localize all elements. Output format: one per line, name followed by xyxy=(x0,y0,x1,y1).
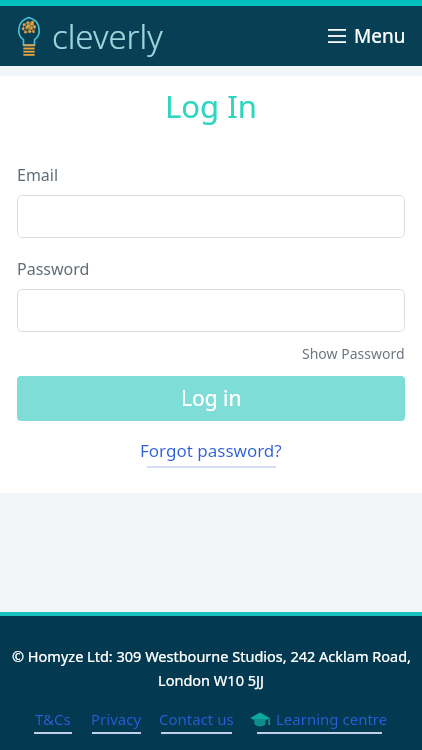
button[interactable]: Email field xyxy=(17,195,405,238)
button[interactable]: cleverly home xyxy=(14,14,163,59)
button[interactable]: Forgot password? xyxy=(140,439,282,468)
staticText: cleverly xyxy=(52,14,163,59)
button[interactable]: Password field xyxy=(17,289,405,332)
button[interactable]: Show Password xyxy=(302,344,405,363)
staticText: Learning centre xyxy=(276,709,388,729)
staticText: Contact us xyxy=(159,709,234,729)
staticText: © Homyze Ltd: 309 Westbourne Studios, 24… xyxy=(12,646,411,666)
button[interactable]: Log in xyxy=(17,376,405,421)
staticText: Forgot password? xyxy=(140,439,282,462)
other: Menu xyxy=(328,29,346,43)
button[interactable]: Contact us xyxy=(159,709,234,734)
button[interactable]: Learning centre xyxy=(250,709,388,734)
staticText: London W10 5JJ xyxy=(158,670,264,690)
staticText: Show Password xyxy=(302,344,405,363)
staticText: T&Cs xyxy=(35,709,71,729)
staticText: Password xyxy=(17,258,90,280)
staticText: Log in xyxy=(181,384,242,413)
staticText: Privacy xyxy=(91,709,142,729)
button[interactable]: T&Cs xyxy=(34,709,72,734)
button[interactable]: Privacy xyxy=(91,709,142,734)
staticText: Menu xyxy=(354,23,406,49)
other: Learning centre xyxy=(250,712,270,727)
staticText: Log In xyxy=(0,85,422,127)
staticText: Email xyxy=(17,164,59,186)
button[interactable]: Menu xyxy=(328,23,406,49)
